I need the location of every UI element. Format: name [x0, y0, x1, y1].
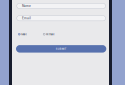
- staticText: Male: [21, 33, 27, 36]
- button[interactable]: Male: [18, 33, 27, 36]
- staticText: SUBMIT: [56, 47, 67, 50]
- staticText: Name: [22, 4, 31, 8]
- button[interactable]: Name: [17, 3, 106, 9]
- button[interactable]: Female: [43, 33, 55, 36]
- button[interactable]: Email: [17, 16, 106, 21]
- button[interactable]: SUBMIT: [16, 45, 106, 53]
- staticText: Email: [22, 16, 31, 20]
- staticText: Female: [46, 33, 55, 36]
